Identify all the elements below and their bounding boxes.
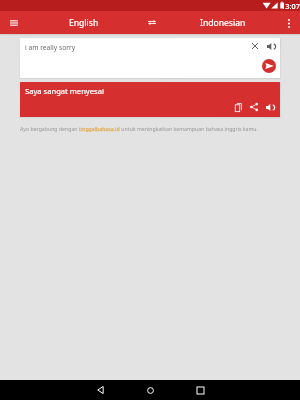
- button[interactable]: Recent apps: [192, 382, 208, 398]
- staticText: English: [69, 17, 99, 29]
- button[interactable]: Copy: [230, 99, 246, 115]
- button[interactable]: Translate: [262, 59, 276, 73]
- button[interactable]: Listen: [263, 38, 279, 54]
- staticText: untuk meningkatkan kemampuan bahasa ingg…: [120, 125, 258, 132]
- button[interactable]: Open navigation menu: [2, 11, 25, 34]
- staticText: i am really sorry: [25, 43, 76, 52]
- button[interactable]: Indonesian: [195, 11, 251, 34]
- button[interactable]: Back: [92, 382, 108, 398]
- button[interactable]: More options: [278, 12, 300, 34]
- staticText: 13:07: [281, 1, 300, 11]
- staticText: Saya sangat menyesal: [25, 86, 104, 96]
- button[interactable]: Home: [142, 382, 158, 398]
- button[interactable]: Swap languages: [142, 11, 162, 34]
- staticText: Indonesian: [200, 17, 246, 29]
- button[interactable]: Clear text: [247, 38, 263, 54]
- button[interactable]: English: [54, 11, 114, 34]
- button[interactable]: tinggalbahasa.id: [79, 125, 120, 132]
- staticText: Ayo bergabung dengan: [20, 125, 79, 132]
- button[interactable]: Listen to translation: [262, 99, 278, 115]
- button[interactable]: Share: [246, 99, 262, 115]
